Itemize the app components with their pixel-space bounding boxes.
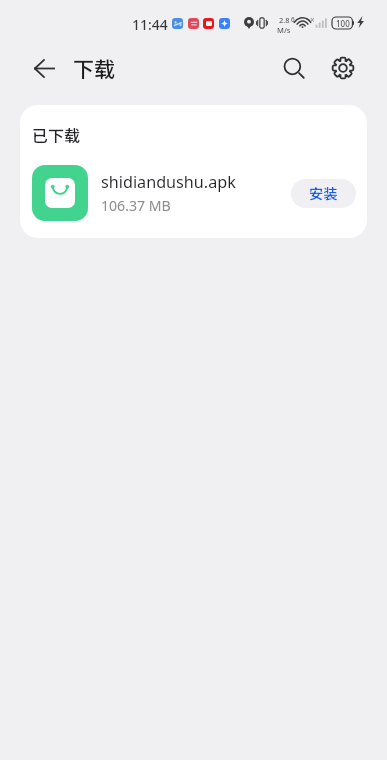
button[interactable]: Search [282, 56, 306, 80]
staticText: 6 [291, 15, 295, 24]
staticText: 2.8 [279, 15, 290, 25]
staticText: 已下载 [32, 123, 81, 146]
staticText: × [310, 14, 315, 25]
staticText: 11:44 [132, 15, 168, 34]
staticText: 安装 [309, 183, 338, 204]
staticText: shidiandushu.apk [101, 171, 236, 193]
staticText: M/s [277, 25, 291, 35]
staticText: 下载 [73, 53, 115, 83]
button[interactable]: Back [22, 51, 66, 85]
button[interactable]: Settings [331, 56, 355, 80]
staticText: 106.37 MB [101, 196, 171, 215]
button[interactable]: 安装 [291, 179, 356, 208]
staticText: 100 [336, 18, 350, 29]
button[interactable]: shidiandushu.apk [20, 157, 367, 229]
